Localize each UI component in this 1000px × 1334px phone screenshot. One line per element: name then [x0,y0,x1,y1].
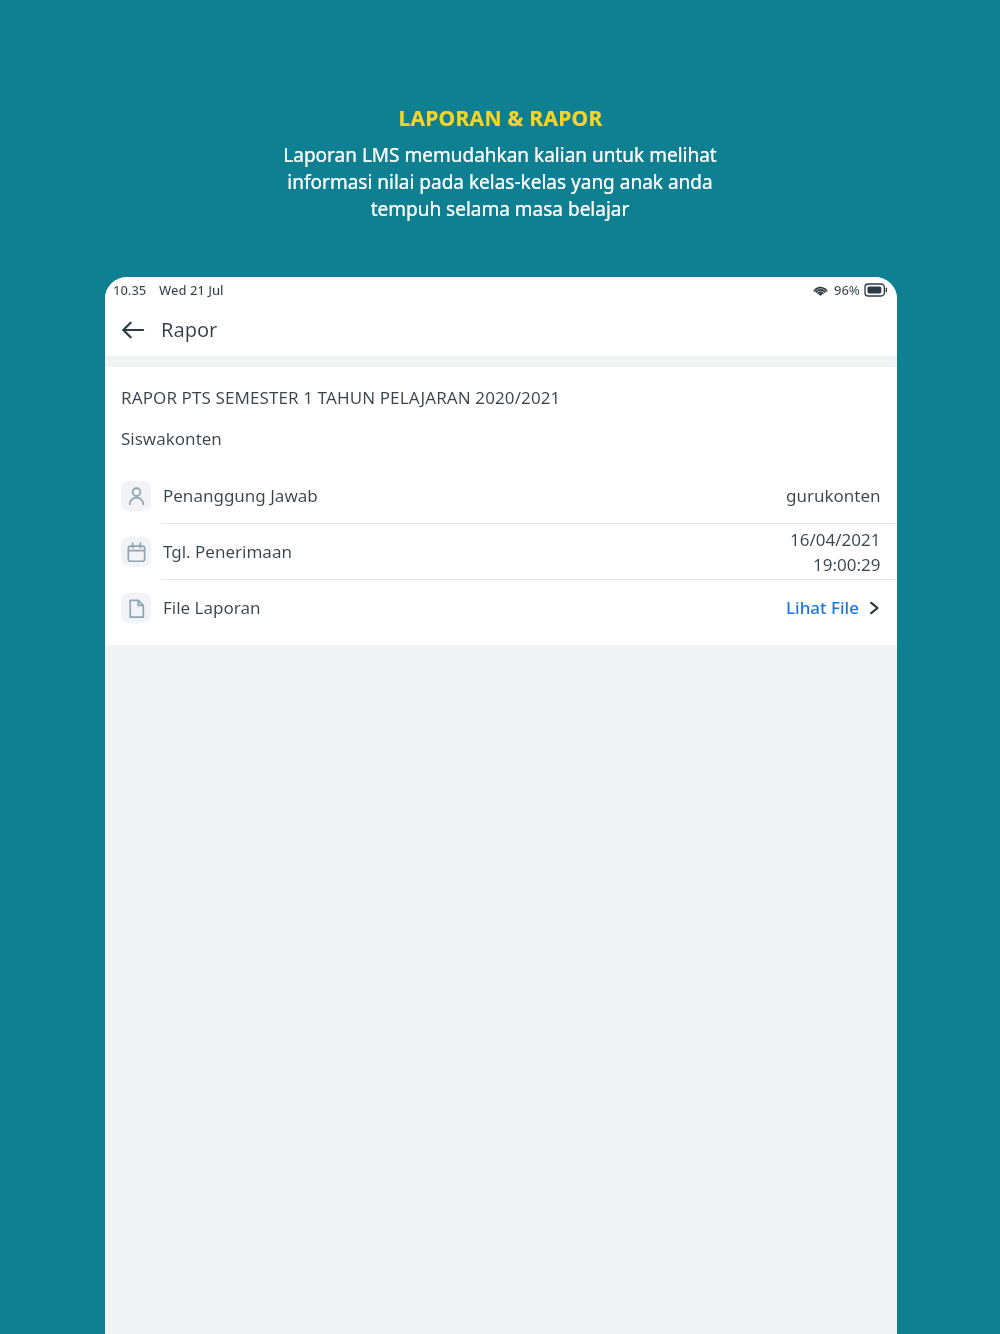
staticText: Siswakonten [121,427,222,450]
staticText: Lihat File [786,596,859,619]
staticText: LAPORAN & RAPOR [398,104,603,133]
button[interactable]: File [105,580,897,635]
staticText: 19:00:29 [813,553,881,576]
other: File [121,593,151,623]
staticText: gurukonten [786,484,881,507]
staticText: 16/04/2021 [790,528,881,551]
staticText: Penanggung Jawab [163,484,318,507]
button[interactable]: Calendar [105,524,897,580]
staticText: Laporan LMS memudahkan kalian untuk meli… [283,142,717,222]
staticText: Wed 21 Jul [159,281,224,299]
staticText: Tgl. Penerimaan [163,540,292,563]
button[interactable]: Back [110,307,156,353]
staticText: File Laporan [163,596,261,619]
other: Calendar [121,537,151,567]
staticText: Rapor [161,316,218,343]
staticText: 10.35 [113,281,147,299]
staticText: RAPOR PTS SEMESTER 1 TAHUN PELAJARAN 202… [121,386,561,409]
staticText: 96% [834,281,860,299]
button[interactable]: Person [105,468,897,524]
other: Person [121,481,151,511]
